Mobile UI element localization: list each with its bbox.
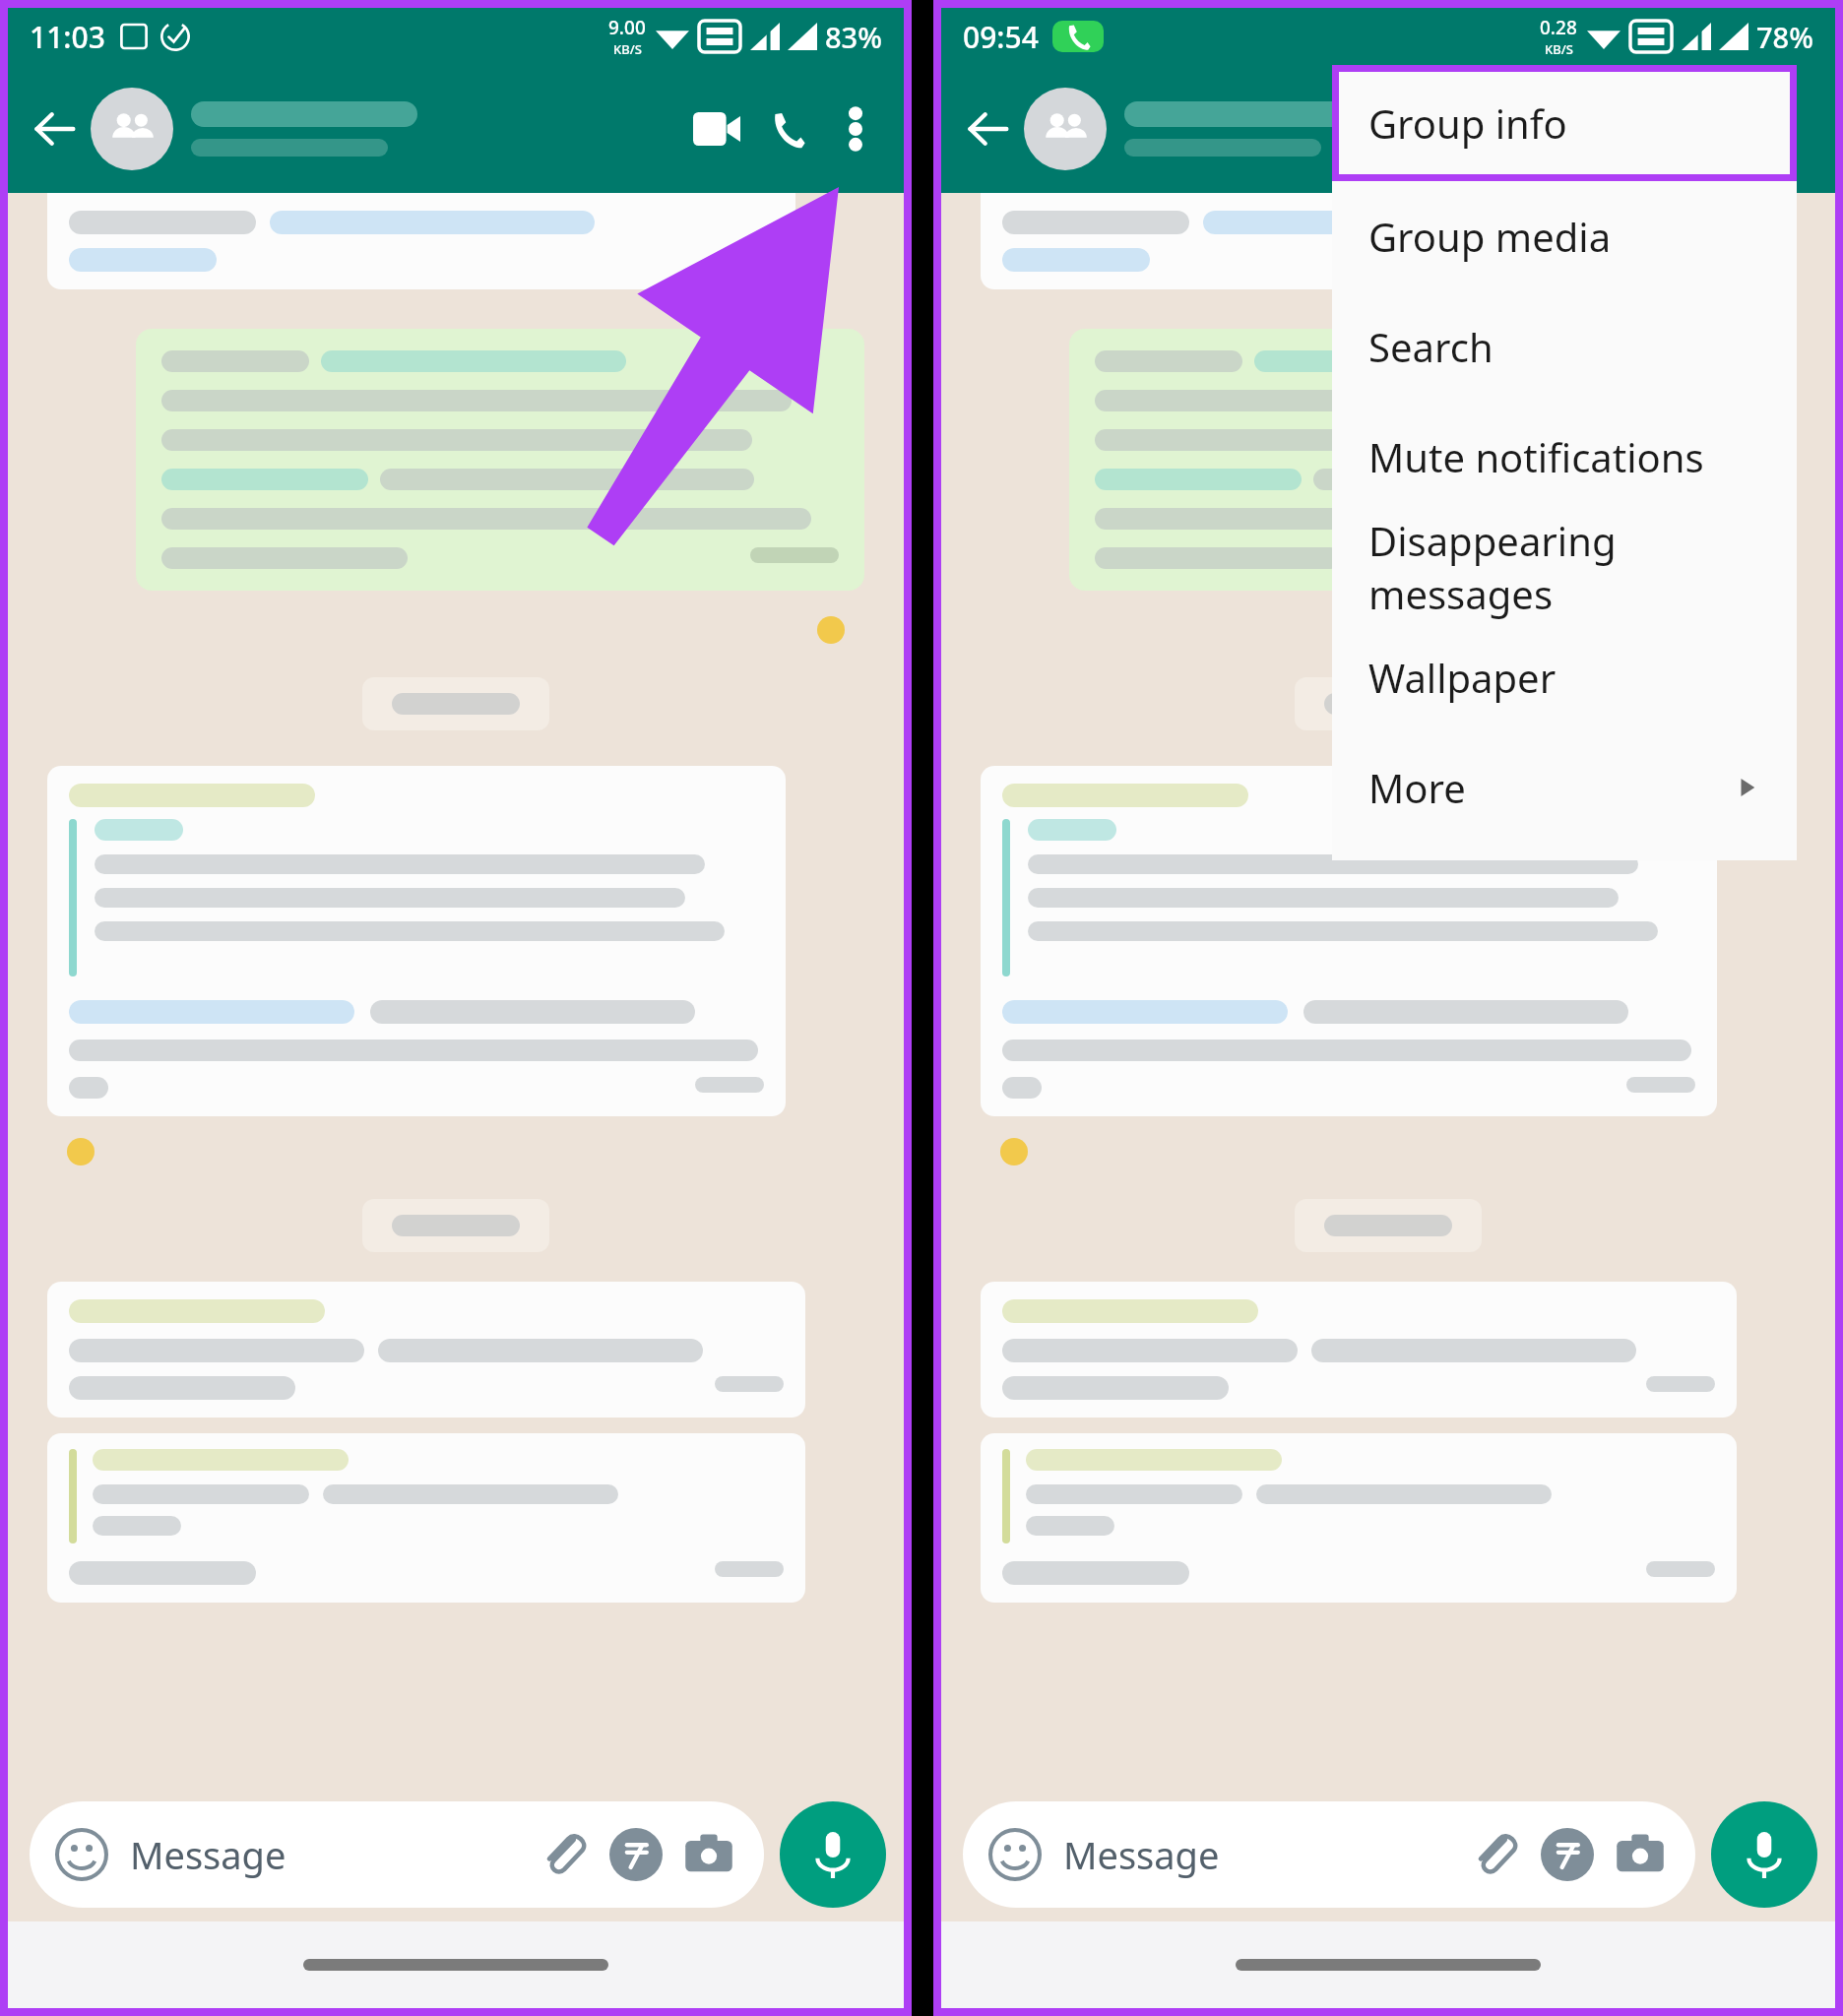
staticText: 83% xyxy=(825,18,882,56)
button[interactable]: Back xyxy=(22,96,87,161)
button[interactable]: Wallpaper xyxy=(1368,622,1760,732)
staticText: 9.00 xyxy=(608,15,646,40)
staticText: More xyxy=(1368,761,1466,814)
button[interactable]: Voice call xyxy=(752,94,823,164)
staticText: Mute notifications xyxy=(1368,430,1704,483)
staticText: 09:54 xyxy=(963,17,1039,57)
staticText: 0.28 xyxy=(1540,15,1577,40)
button[interactable]: Group photo xyxy=(91,88,173,170)
staticText: Group media xyxy=(1368,210,1612,263)
staticText: Message xyxy=(130,1829,286,1880)
button[interactable]: Search xyxy=(1368,291,1760,402)
button[interactable]: Group photo xyxy=(1024,88,1107,170)
button[interactable]: Attach xyxy=(534,1825,593,1884)
button[interactable]: Voice message xyxy=(1711,1801,1817,1908)
staticText: Wallpaper xyxy=(1368,651,1557,704)
staticText: 11:03 xyxy=(30,17,105,57)
staticText: Message xyxy=(1063,1829,1220,1880)
button[interactable] xyxy=(1124,101,1622,157)
button[interactable]: Mute notifications xyxy=(1368,402,1760,512)
button[interactable]: Video call xyxy=(681,94,752,164)
button[interactable]: Group info xyxy=(1368,72,1760,174)
button[interactable]: Group media xyxy=(1368,181,1760,291)
staticText: 78% xyxy=(1756,18,1813,56)
button[interactable]: More xyxy=(1368,732,1760,843)
button[interactable]: Back xyxy=(955,96,1020,161)
staticText: Disappearing messages xyxy=(1368,514,1760,620)
staticText: KB/S xyxy=(613,40,642,58)
staticText: Search xyxy=(1368,320,1493,373)
button[interactable] xyxy=(191,101,681,157)
staticText: Group info xyxy=(1368,96,1567,150)
button[interactable]: Message xyxy=(988,1801,1670,1908)
button[interactable]: More options xyxy=(823,96,888,161)
button[interactable]: Attach xyxy=(1465,1825,1524,1884)
button[interactable]: Camera xyxy=(679,1825,738,1884)
staticText: KB/S xyxy=(1545,40,1573,58)
button[interactable]: Disappearing messages xyxy=(1368,512,1760,622)
button[interactable]: Payment xyxy=(1538,1825,1597,1884)
button[interactable]: Voice message xyxy=(780,1801,886,1908)
button[interactable]: Payment xyxy=(606,1825,666,1884)
button[interactable]: Camera xyxy=(1611,1825,1670,1884)
button[interactable]: Message xyxy=(55,1801,738,1908)
